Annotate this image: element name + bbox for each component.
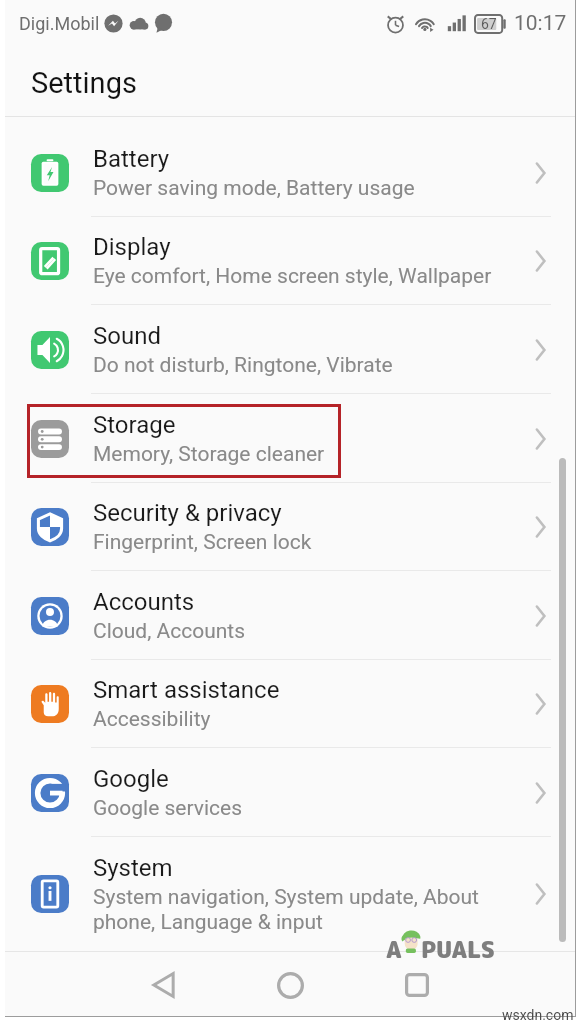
staticText: Smart assistance	[93, 676, 280, 704]
staticText: Memory, Storage cleaner	[93, 442, 325, 467]
button[interactable]: Security & privacy	[0, 483, 581, 571]
button[interactable]: Smart assistance	[0, 660, 581, 748]
button[interactable]: Display	[0, 217, 581, 305]
staticText: Security & privacy	[93, 499, 282, 527]
button[interactable]: Sound	[0, 305, 581, 394]
staticText: Storage	[93, 411, 176, 439]
staticText: Power saving mode, Battery usage	[93, 176, 415, 201]
staticText: System	[93, 854, 173, 882]
staticText: Digi.Mobil	[19, 13, 100, 34]
staticText: Fingerprint, Screen lock	[93, 530, 312, 555]
button[interactable]: Accounts	[0, 571, 581, 660]
button[interactable]: Recents	[395, 963, 439, 1007]
staticText: Cloud, Accounts	[93, 619, 246, 644]
button[interactable]: Home	[268, 963, 312, 1007]
staticText: Google	[93, 765, 169, 793]
staticText: Eye comfort, Home screen style, Wallpape…	[93, 264, 492, 289]
staticText: PUALS	[421, 933, 495, 965]
button[interactable]: Back	[141, 963, 185, 1007]
staticText: Google services	[93, 796, 243, 821]
button[interactable]: System	[0, 837, 581, 951]
staticText: System navigation, System update, About	[93, 885, 479, 910]
staticText: Accessibility	[93, 707, 211, 732]
staticText: Do not disturb, Ringtone, Vibrate	[93, 353, 393, 378]
staticText: Settings	[31, 66, 137, 100]
button[interactable]: Storage	[0, 394, 581, 483]
staticText: Display	[93, 233, 171, 261]
staticText: 67	[481, 16, 497, 32]
staticText: A	[386, 933, 402, 965]
staticText: wsxdn.com	[502, 1007, 574, 1023]
button[interactable]: Battery	[0, 128, 581, 217]
staticText: Sound	[93, 322, 161, 350]
staticText: Accounts	[93, 588, 195, 616]
staticText: Battery	[93, 145, 170, 173]
staticText: 10:17	[514, 11, 567, 36]
staticText: phone, Language & input	[93, 910, 323, 935]
button[interactable]: Google	[0, 748, 581, 837]
